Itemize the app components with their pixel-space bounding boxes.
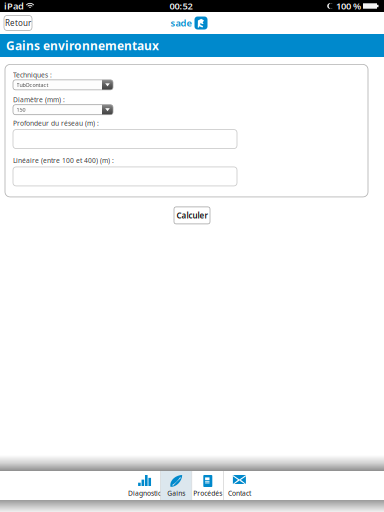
button[interactable]: Gains (161, 471, 192, 500)
staticText: 100 % (336, 0, 361, 12)
staticText: Diagnostic (128, 489, 161, 497)
staticText: Linéaire (entre 100 et 400) (m) : (13, 156, 114, 165)
staticText: Profondeur du réseau (m) : (13, 119, 99, 128)
staticText: Calculer (176, 210, 207, 221)
staticText: Gains environnementaux (6, 37, 159, 53)
button[interactable]: Retour (4, 15, 32, 30)
button[interactable]: Procédés (192, 471, 223, 500)
staticText: TubOcontact (16, 81, 48, 88)
button[interactable]: Champ de saisie (13, 130, 237, 149)
staticText: sade (170, 17, 191, 29)
button[interactable]: Diagnostic (129, 471, 160, 500)
staticText: Retour (5, 18, 31, 28)
button[interactable]: Contact (224, 471, 255, 500)
staticText: Diamètre (mm) : (13, 95, 65, 104)
button[interactable]: TubOcontact (13, 80, 113, 90)
staticText: Procédés (193, 489, 222, 497)
staticText: Gains (167, 489, 185, 497)
button[interactable]: Champ de saisie (13, 167, 237, 186)
staticText: iPad (4, 0, 24, 12)
staticText: 00:52 (169, 0, 192, 12)
staticText: 150 (16, 106, 25, 113)
button[interactable]: Calculer (174, 207, 210, 224)
staticText: Techniques : (13, 70, 52, 79)
staticText: Contact (228, 489, 251, 497)
button[interactable]: 150 (13, 105, 113, 115)
